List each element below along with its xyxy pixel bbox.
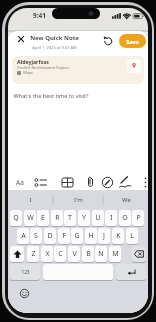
button[interactable]: F [58,228,70,244]
button[interactable]: T [64,210,76,226]
staticText: A [21,231,26,241]
button[interactable]: C [54,246,66,262]
staticText: N [98,249,104,259]
button[interactable] [84,176,94,188]
staticText: S [34,231,38,241]
button[interactable]: V [68,246,80,262]
staticText: W [27,213,34,223]
staticText: L [130,231,134,241]
button[interactable]: I [8,192,52,208]
staticText: V [72,249,77,259]
button[interactable]: E [37,210,49,226]
staticText: J [103,231,105,241]
staticText: E [41,213,45,223]
button[interactable]: Q [10,210,22,226]
button[interactable] [103,36,114,47]
button[interactable]: P [132,210,144,226]
staticText: New Quick Note [30,34,79,42]
staticText: We [122,196,131,204]
staticText: Y [82,213,86,223]
button[interactable]: N [95,246,107,262]
staticText: B [86,249,91,259]
staticText: What's the best time to visit? [13,92,89,100]
button[interactable]: Aldeyjarfoss [12,56,144,84]
button[interactable] [34,177,48,188]
button[interactable] [61,177,74,188]
staticText: X [45,249,50,259]
button[interactable]: Aa [13,176,27,188]
button[interactable] [132,246,146,262]
staticText: Maps [23,70,33,75]
staticText: Q [13,213,19,223]
button[interactable]: M [109,246,121,262]
staticText: Foothill Northeastern Region [17,65,69,70]
button[interactable] [10,246,24,262]
staticText: H [88,231,94,241]
staticText: Aa [16,178,24,187]
button[interactable]: B [82,246,94,262]
button[interactable]: U [92,210,104,226]
staticText: I'm [74,196,83,204]
staticText: Save [126,38,139,45]
staticText: K [116,231,121,241]
staticText: April 1, 2025 at 9:41 AM [32,45,77,50]
button[interactable]: L [126,228,138,244]
staticText: T [68,213,72,223]
button[interactable]: A [17,228,29,244]
button[interactable]: S [30,228,42,244]
button[interactable]: H [85,228,97,244]
staticText: P [136,213,141,223]
button[interactable]: Y [78,210,90,226]
button[interactable]: O [119,210,131,226]
staticText: C [58,249,63,259]
button[interactable]: D [44,228,56,244]
staticText: G [74,231,80,241]
button[interactable]: J [98,228,110,244]
staticText: I [110,213,113,223]
staticText: R [55,213,60,223]
staticText: Aldeyjarfoss [17,58,49,65]
button[interactable] [118,176,132,189]
staticText: F [62,231,66,241]
button[interactable]: X [41,246,53,262]
button[interactable]: K [112,228,124,244]
staticText: U [95,213,101,223]
button[interactable]: Z [27,246,39,262]
staticText: O [122,213,128,223]
staticText: D [47,231,53,241]
button[interactable]: Save [119,34,146,48]
button[interactable] [15,33,27,45]
button[interactable]: We [104,192,148,208]
button[interactable]: I [105,210,117,226]
staticText: M [112,249,119,259]
button[interactable]: G [71,228,83,244]
button[interactable]: I'm [54,192,102,208]
staticText: Z [31,249,36,259]
button[interactable]: W [24,210,36,226]
button[interactable] [101,176,114,189]
button[interactable]: 123 [10,264,40,280]
staticText: 123 [21,269,30,276]
button[interactable] [19,288,30,299]
button[interactable] [116,264,146,280]
button[interactable]: R [51,210,63,226]
staticText: 9:41 [33,11,46,20]
staticText: I [29,196,32,204]
